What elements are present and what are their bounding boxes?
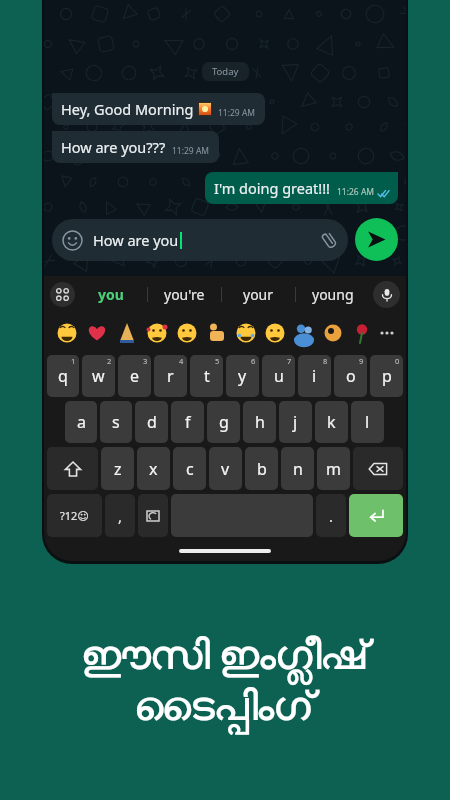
button[interactable]: Emoji 10 (347, 313, 376, 353)
button[interactable]: Emoji 3 (142, 313, 172, 353)
button[interactable]: young (296, 276, 369, 313)
staticText: Today (212, 65, 239, 78)
button[interactable]: your (222, 276, 295, 313)
staticText: 5 (215, 356, 220, 366)
button[interactable]: d (135, 401, 168, 443)
staticText: you're (164, 285, 205, 304)
staticText: x (149, 458, 158, 480)
staticText: b (257, 458, 267, 480)
button[interactable]: c (173, 447, 206, 490)
staticText: k (327, 411, 336, 433)
button[interactable]: w (82, 355, 115, 397)
button[interactable]: z (101, 447, 134, 490)
button[interactable]: e (118, 355, 151, 397)
button[interactable]: o (334, 355, 367, 397)
staticText: 0 (395, 356, 400, 366)
button[interactable]: you (75, 276, 147, 313)
button[interactable]: ?12☺ (47, 494, 102, 537)
button[interactable]: How are you??? (52, 131, 219, 163)
staticText: s (112, 411, 120, 433)
staticText: w (92, 365, 105, 387)
button[interactable]: Emoji 8 (289, 313, 318, 353)
staticText: Hey, Good Morning (61, 99, 194, 119)
button[interactable]: . (316, 494, 346, 537)
button[interactable]: q (47, 355, 79, 397)
button[interactable]: s (100, 401, 132, 443)
button[interactable]: Hey, Good Morning (52, 93, 265, 125)
staticText: i (312, 365, 317, 387)
staticText: ടൈപ്പിംഗ് (135, 688, 315, 728)
staticText: ഈസി ഇംഗ്ലീഷ് (82, 626, 369, 680)
staticText: t (204, 365, 210, 387)
button[interactable]: Emoji (52, 219, 348, 261)
staticText: you (98, 285, 124, 304)
button[interactable]: l (351, 401, 384, 443)
button[interactable]: k (315, 401, 348, 443)
staticText: 4 (179, 356, 184, 366)
button[interactable]: m (317, 447, 350, 490)
button[interactable]: I'm doing great!!! (205, 172, 398, 204)
staticText: j (293, 411, 298, 433)
staticText: y (238, 365, 247, 387)
button[interactable]: Emoji 1 (82, 313, 112, 353)
button[interactable]: Attach (320, 231, 338, 249)
button[interactable]: Shift (47, 447, 98, 490)
staticText: 3 (143, 356, 148, 366)
staticText: 2 (107, 356, 112, 366)
staticText: 7 (287, 356, 292, 366)
button[interactable]: Emoji 5 (202, 313, 231, 353)
button[interactable]: Emoji 2 (112, 313, 142, 353)
staticText: l (365, 411, 370, 433)
staticText: I'm doing great!!! (214, 178, 331, 198)
button[interactable]: v (209, 447, 242, 490)
staticText: p (382, 365, 392, 387)
button[interactable]: f (171, 401, 204, 443)
staticText: q (58, 365, 68, 387)
button[interactable]: t (190, 355, 223, 397)
staticText: f (185, 411, 191, 433)
staticText: h (255, 411, 265, 433)
button[interactable]: n (281, 447, 314, 490)
button[interactable]: Language (138, 494, 168, 537)
button[interactable]: g (207, 401, 240, 443)
button[interactable]: Emoji 9 (318, 313, 347, 353)
staticText: m (326, 458, 341, 480)
button[interactable]: y (226, 355, 259, 397)
staticText: 1 (71, 356, 76, 366)
button[interactable]: Emoji 7 (260, 313, 289, 353)
button[interactable]: Enter (349, 494, 403, 537)
staticText: a (77, 411, 86, 433)
staticText: How are you??? (61, 137, 166, 157)
button[interactable]: b (245, 447, 278, 490)
staticText: , (118, 506, 123, 526)
button[interactable]: Voice input (373, 281, 400, 308)
button[interactable]: x (137, 447, 170, 490)
button[interactable]: Emoji 0 (52, 313, 82, 353)
button[interactable]: p (370, 355, 403, 397)
staticText: 6 (251, 356, 256, 366)
button[interactable]: a (65, 401, 97, 443)
staticText: d (147, 411, 157, 433)
button[interactable]: r (154, 355, 187, 397)
staticText: g (219, 411, 229, 433)
staticText: o (346, 365, 356, 387)
button[interactable]: Keyboard menu (50, 282, 75, 307)
staticText: How are you (93, 230, 179, 250)
button[interactable]: u (262, 355, 295, 397)
staticText: young (312, 285, 354, 304)
button[interactable]: Send (355, 218, 398, 261)
button[interactable]: Emoji 6 (231, 313, 260, 353)
button[interactable]: h (243, 401, 276, 443)
button[interactable]: , (105, 494, 135, 537)
button[interactable]: Backspace (353, 447, 403, 490)
button[interactable]: Emoji 4 (172, 313, 202, 353)
staticText: your (243, 285, 274, 304)
button[interactable]: i (298, 355, 331, 397)
button[interactable]: j (279, 401, 312, 443)
staticText: r (167, 365, 174, 387)
button[interactable]: you're (148, 276, 221, 313)
staticText: 11:29 AM (172, 145, 210, 157)
button[interactable]: Emoji (62, 230, 83, 251)
button[interactable]: More emoji (376, 313, 398, 353)
